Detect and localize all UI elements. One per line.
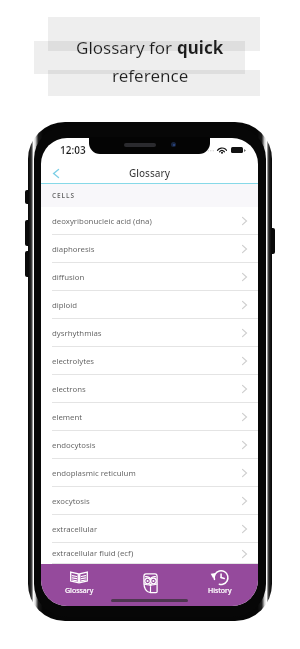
staticText: CELLS	[52, 191, 75, 200]
button[interactable]: diploid	[41, 291, 258, 319]
staticText: diffusion	[52, 272, 85, 283]
staticText: dysrhythmias	[52, 328, 102, 339]
button[interactable]: extracellular	[41, 515, 258, 543]
staticText: endoplasmic reticulum	[52, 468, 136, 479]
button[interactable]: dysrhythmias	[41, 319, 258, 347]
staticText: History	[208, 586, 232, 596]
button[interactable]: element	[41, 403, 258, 431]
staticText: diaphoresis	[52, 244, 95, 255]
staticText: Glossary	[129, 166, 171, 180]
button[interactable]: electrons	[41, 375, 258, 403]
staticText: exocytosis	[52, 496, 90, 507]
button[interactable]: exocytosis	[41, 487, 258, 515]
staticText: reference	[112, 64, 189, 87]
staticText: deoxyribonucleic acid (dna)	[52, 216, 152, 227]
staticText: electrolytes	[52, 356, 95, 367]
staticText: extracellular fluid (ecf)	[52, 548, 134, 559]
button[interactable]: Study	[117, 566, 183, 600]
staticText: diploid	[52, 300, 78, 311]
button[interactable]: diffusion	[41, 263, 258, 291]
button[interactable]: endoplasmic reticulum	[41, 459, 258, 487]
button[interactable]: electrolytes	[41, 347, 258, 375]
staticText: element	[52, 412, 83, 423]
button[interactable]: History	[187, 566, 253, 600]
button[interactable]: Glossary	[46, 566, 112, 600]
staticText: endocytosis	[52, 440, 96, 451]
button[interactable]: endocytosis	[41, 431, 258, 459]
staticText: Glossary	[65, 586, 94, 596]
staticText: extracellular	[52, 524, 98, 535]
staticText: Glossary for	[76, 36, 177, 59]
staticText: 12:03	[60, 143, 86, 157]
staticText: electrons	[52, 384, 86, 395]
button[interactable]: extracellular fluid (ecf)	[41, 543, 258, 564]
button[interactable]: deoxyribonucleic acid (dna)	[41, 207, 258, 235]
button[interactable]: diaphoresis	[41, 235, 258, 263]
staticText: quick	[177, 36, 224, 59]
button[interactable]: Back	[41, 162, 67, 184]
